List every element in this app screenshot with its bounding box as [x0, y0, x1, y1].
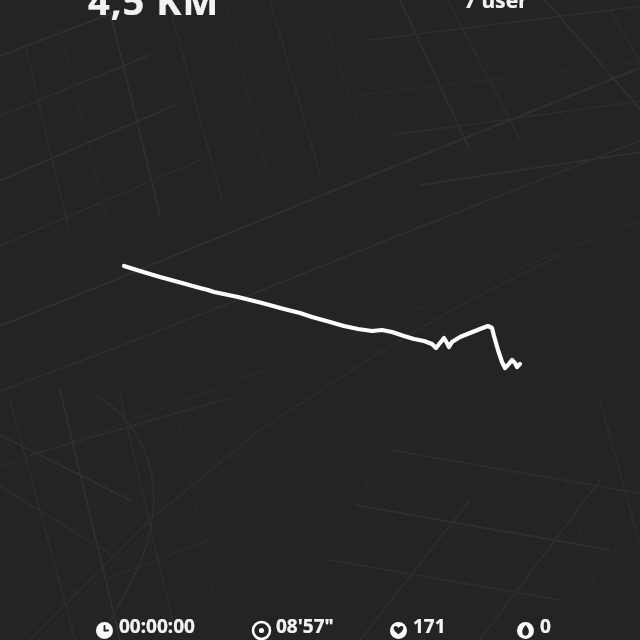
- staticText: 4,5 KM: [88, 0, 220, 26]
- button[interactable]: Pace 08'57": [253, 613, 334, 639]
- button[interactable]: Heart rate 171: [390, 613, 446, 639]
- button[interactable]: Calories 0: [517, 613, 551, 639]
- staticText: 7 user: [464, 0, 528, 15]
- staticText: 00:00:00: [119, 613, 195, 639]
- staticText: 08'57": [276, 613, 334, 639]
- staticText: 171: [413, 613, 446, 639]
- staticText: 0: [540, 613, 551, 639]
- button[interactable]: Duration 00:00:00: [96, 613, 195, 639]
- button[interactable]: [0, 0, 640, 640]
